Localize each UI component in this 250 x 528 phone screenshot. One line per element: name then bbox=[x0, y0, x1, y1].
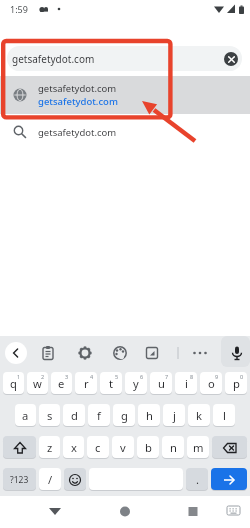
button[interactable]: r bbox=[75, 372, 97, 395]
staticText: f bbox=[97, 408, 101, 423]
button[interactable] bbox=[114, 501, 136, 523]
staticText: 7 bbox=[165, 373, 169, 380]
staticText: u bbox=[158, 376, 165, 391]
staticText: c bbox=[95, 440, 101, 455]
button[interactable]: m bbox=[187, 436, 209, 459]
button[interactable]: ?123 bbox=[3, 468, 36, 491]
staticText: 0 bbox=[240, 373, 244, 380]
button[interactable] bbox=[144, 345, 160, 361]
button[interactable]: e bbox=[51, 372, 72, 395]
button[interactable]: q bbox=[3, 372, 24, 395]
staticText: 1 bbox=[17, 373, 21, 380]
button[interactable] bbox=[182, 501, 204, 523]
staticText: 2 bbox=[41, 373, 45, 380]
staticText: e bbox=[58, 376, 65, 391]
staticText: 9 bbox=[215, 373, 219, 380]
button[interactable]: z bbox=[39, 436, 60, 459]
staticText: x bbox=[71, 440, 77, 455]
button[interactable]: f bbox=[88, 404, 110, 427]
staticText: k bbox=[196, 408, 202, 423]
button[interactable]: i bbox=[175, 372, 197, 395]
button[interactable] bbox=[64, 468, 86, 491]
staticText: / bbox=[48, 472, 53, 487]
button[interactable]: . bbox=[186, 468, 208, 491]
staticText: 8 bbox=[190, 373, 194, 380]
button[interactable]: w bbox=[27, 372, 48, 395]
button[interactable]: d bbox=[63, 404, 85, 427]
staticText: ?123 bbox=[10, 474, 29, 486]
staticText: n bbox=[170, 440, 177, 455]
button[interactable] bbox=[40, 345, 56, 361]
button[interactable] bbox=[89, 468, 183, 491]
button[interactable] bbox=[3, 436, 36, 459]
staticText: j bbox=[173, 408, 176, 423]
button[interactable]: getsafetydot.com bbox=[0, 76, 250, 114]
staticText: d bbox=[71, 408, 78, 423]
button[interactable]: a bbox=[15, 404, 36, 427]
button[interactable]: n bbox=[162, 436, 184, 459]
button[interactable] bbox=[212, 436, 247, 459]
staticText: i bbox=[185, 376, 188, 391]
staticText: getsafetydot.com bbox=[12, 52, 95, 66]
button[interactable]: s bbox=[39, 404, 60, 427]
button[interactable]: y bbox=[125, 372, 147, 395]
button[interactable]: o bbox=[200, 372, 222, 395]
button[interactable] bbox=[211, 468, 247, 491]
button[interactable] bbox=[192, 345, 208, 361]
staticText: p bbox=[233, 376, 240, 391]
staticText: getsafetydot.com bbox=[38, 95, 118, 108]
staticText: o bbox=[208, 376, 215, 391]
staticText: q bbox=[10, 376, 17, 391]
staticText: l bbox=[223, 408, 226, 423]
staticText: m bbox=[193, 440, 204, 455]
staticText: z bbox=[47, 440, 53, 455]
staticText: getsafetydot.com bbox=[38, 82, 117, 95]
button[interactable] bbox=[229, 345, 245, 361]
staticText: b bbox=[145, 440, 152, 455]
staticText: 6 bbox=[140, 373, 144, 380]
button[interactable]: b bbox=[137, 436, 159, 459]
staticText: w bbox=[33, 376, 42, 391]
button[interactable] bbox=[225, 502, 243, 520]
button[interactable]: c bbox=[87, 436, 109, 459]
staticText: a bbox=[22, 408, 29, 423]
staticText: s bbox=[47, 408, 53, 423]
button[interactable]: h bbox=[138, 404, 160, 427]
staticText: 5 bbox=[115, 373, 119, 380]
button[interactable]: v bbox=[112, 436, 134, 459]
button[interactable]: getsafetydot.com bbox=[0, 114, 250, 150]
staticText: v bbox=[120, 440, 126, 455]
button[interactable] bbox=[112, 345, 128, 361]
staticText: g bbox=[121, 408, 128, 423]
staticText: t bbox=[109, 376, 114, 391]
button[interactable]: t bbox=[100, 372, 122, 395]
staticText: y bbox=[133, 376, 139, 391]
button[interactable]: j bbox=[163, 404, 185, 427]
button[interactable]: u bbox=[150, 372, 172, 395]
button[interactable]: x bbox=[63, 436, 84, 459]
button[interactable] bbox=[224, 52, 238, 66]
staticText: 3 bbox=[65, 373, 69, 380]
button[interactable] bbox=[44, 501, 66, 523]
button[interactable]: l bbox=[213, 404, 235, 427]
button[interactable]: k bbox=[188, 404, 210, 427]
button[interactable]: p bbox=[225, 372, 247, 395]
staticText: getsafetydot.com bbox=[38, 126, 117, 139]
button[interactable] bbox=[77, 345, 93, 361]
button[interactable]: g bbox=[113, 404, 135, 427]
button[interactable]: / bbox=[39, 468, 61, 491]
staticText: h bbox=[146, 408, 153, 423]
staticText: 4 bbox=[90, 373, 94, 380]
staticText: 1:59 bbox=[10, 3, 28, 15]
staticText: r bbox=[84, 376, 89, 391]
staticText: . bbox=[196, 472, 199, 487]
button[interactable] bbox=[5, 342, 27, 364]
